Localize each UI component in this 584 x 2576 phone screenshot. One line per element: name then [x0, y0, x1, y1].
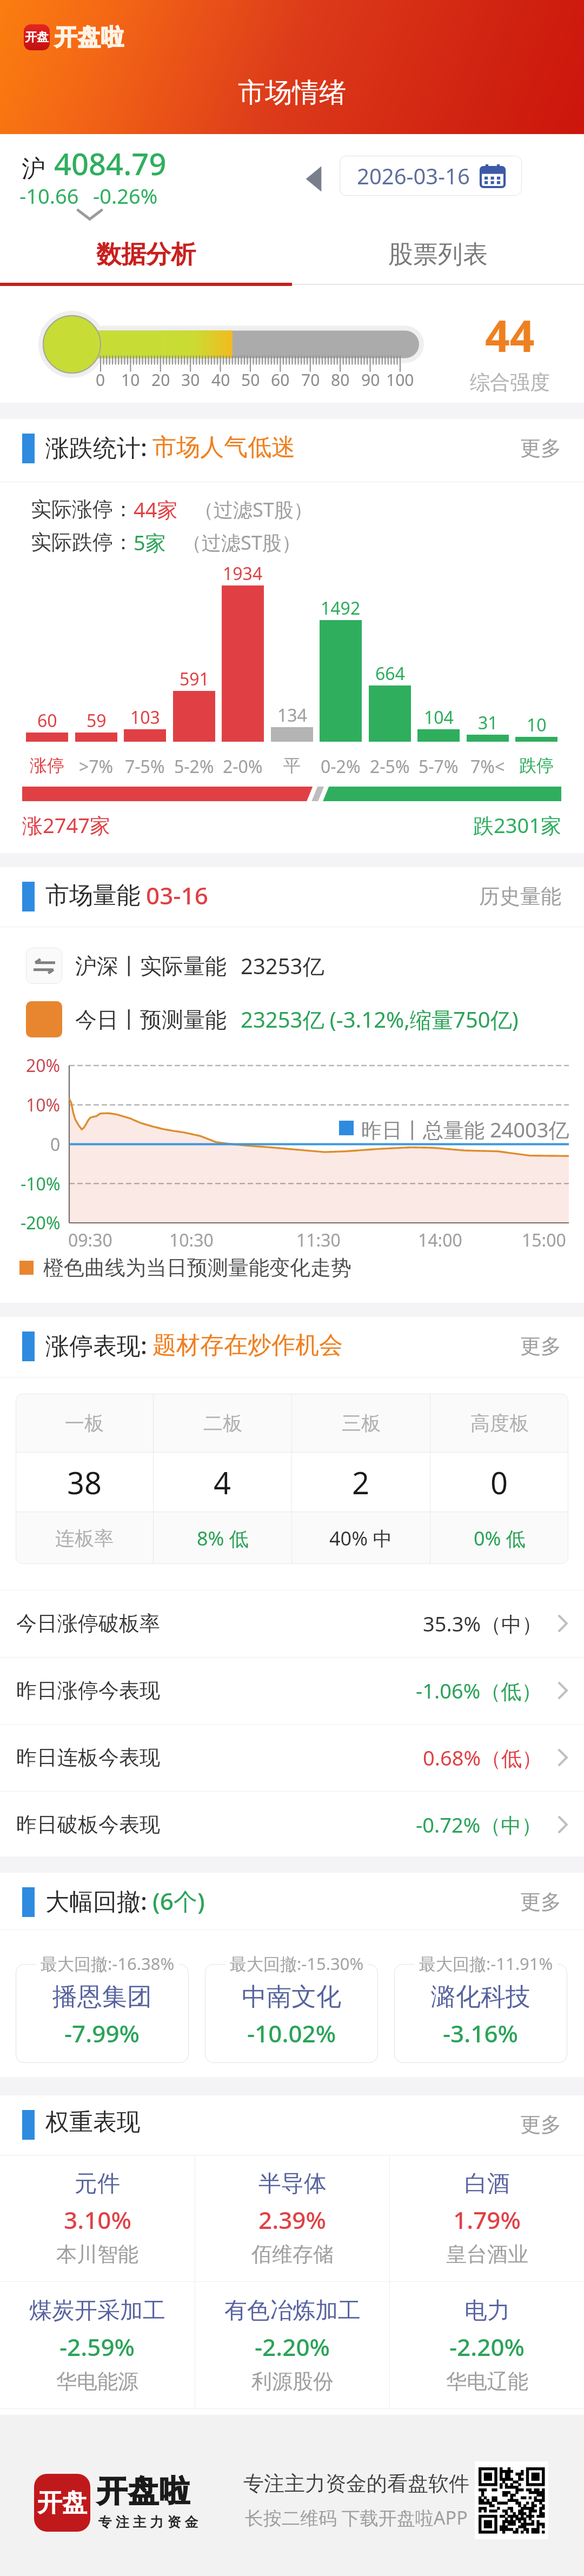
staticText: 二板 [203, 1411, 242, 1435]
button[interactable]: 更多 [520, 1333, 561, 1359]
staticText: 20 [151, 369, 170, 391]
staticText: 最大回撤:-11.91% [419, 1952, 553, 1975]
staticText: 昨日破板今表现 [16, 1812, 160, 1838]
staticText: 30 [181, 369, 200, 391]
staticText: 591 [180, 667, 209, 691]
staticText: 44家 [134, 495, 178, 523]
staticText: 2026-03-16 [357, 161, 470, 190]
staticText: 5家 [134, 528, 166, 556]
staticText: 134 [277, 703, 307, 727]
button[interactable]: 昨日涨停今表现 [0, 1657, 584, 1724]
button[interactable]: 股票列表 [292, 224, 584, 285]
staticText: -3.16% [443, 2017, 519, 2049]
staticText: -1.06%（低） [416, 1676, 542, 1705]
staticText: （过滤ST股） [194, 496, 313, 523]
button[interactable]: 2026-03-16 [340, 156, 522, 196]
staticText: 元件 [75, 2169, 120, 2198]
staticText: 涨停 [30, 755, 64, 776]
button[interactable]: 历史量能 [479, 883, 561, 909]
staticText: 0 [96, 369, 105, 391]
staticText: 104 [424, 705, 454, 729]
staticText: 最大回撤:-15.30% [230, 1952, 364, 1975]
staticText: 跌停 [519, 755, 554, 776]
staticText: 8% 低 [197, 1525, 249, 1552]
staticText: 7%< [470, 755, 505, 778]
button[interactable]: 更多 [520, 1889, 561, 1915]
staticText: 0.68%（低） [423, 1743, 542, 1772]
staticText: -10% [21, 1172, 61, 1196]
staticText: 5-7% [419, 755, 459, 778]
button[interactable]: 昨日破板今表现 [0, 1791, 584, 1858]
staticText: 电力 [464, 2297, 510, 2325]
staticText: 本川智能 [56, 2241, 138, 2267]
staticText: 1.79% [453, 2204, 521, 2236]
staticText: >7% [79, 755, 114, 778]
staticText: 历史量能 [479, 883, 561, 909]
staticText: 涨2747家 [22, 811, 110, 839]
staticText: 平 [283, 755, 301, 776]
staticText: 1492 [321, 596, 361, 620]
staticText: 4 [214, 1462, 231, 1503]
staticText: 2-0% [223, 755, 263, 778]
button[interactable]: 更多 [520, 2112, 561, 2138]
button[interactable]: 煤炭开采加工 [0, 2282, 195, 2408]
button[interactable] [394, 1964, 567, 2063]
button[interactable]: 更多 [520, 435, 561, 461]
staticText: 0-2% [321, 755, 361, 778]
staticText: 4084.79 [54, 143, 167, 184]
staticText: 中南文化 [242, 1981, 341, 2013]
staticText: 15:00 [522, 1228, 566, 1252]
staticText: 0% 低 [474, 1525, 526, 1552]
staticText: 长按二维码 下载开盘啦APP [245, 2505, 468, 2530]
staticText: 有色冶炼加工 [224, 2297, 361, 2325]
button[interactable]: 今日涨停破板率 [0, 1590, 584, 1657]
staticText: 橙色曲线为当日预测量能变化走势 [43, 1255, 351, 1281]
staticText: 题材存在炒作机会 [152, 1330, 343, 1360]
staticText: 实际跌停： [31, 529, 134, 555]
staticText: 60 [37, 709, 57, 733]
button[interactable]: 前一天 [304, 165, 324, 193]
staticText: 昨日涨停今表现 [16, 1678, 160, 1703]
button[interactable]: 半导体 [195, 2155, 389, 2281]
staticText: 23253亿 [241, 951, 324, 981]
button[interactable]: 电力 [390, 2282, 584, 2408]
staticText: 23253亿 (-3.12%,缩量750亿) [241, 1004, 519, 1034]
staticText: 一板 [65, 1411, 104, 1435]
staticText: 31 [478, 711, 498, 735]
staticText: 11:30 [296, 1228, 341, 1252]
button[interactable]: 元件 [0, 2155, 195, 2281]
staticText: 播恩集团 [52, 1981, 152, 2013]
staticText: 市场量能 [45, 881, 141, 910]
staticText: 35.3%（中） [423, 1609, 542, 1638]
staticText: 涨跌统计: [45, 431, 147, 463]
staticText: 开盘啦 [54, 23, 124, 52]
staticText: 10 [527, 713, 547, 737]
staticText: 数据分析 [96, 239, 196, 270]
staticText: 103 [130, 705, 160, 729]
staticText: 2-5% [370, 755, 410, 778]
button[interactable]: 有色冶炼加工 [195, 2282, 389, 2408]
staticText: -2.59% [59, 2331, 135, 2363]
staticText: 7-5% [125, 755, 165, 778]
staticText: 40% 中 [329, 1525, 393, 1552]
staticText: 2 [352, 1462, 370, 1503]
staticText: 40 [211, 369, 230, 391]
staticText: 3.10% [64, 2204, 131, 2236]
staticText: 综合强度 [470, 370, 550, 395]
staticText: 664 [375, 662, 405, 685]
button[interactable] [205, 1964, 378, 2063]
staticText: -10.66 [19, 182, 79, 210]
staticText: 专注主力资金的看盘软件 [243, 2471, 469, 2497]
button[interactable]: 白酒 [390, 2155, 584, 2281]
staticText: 皇台酒业 [446, 2241, 528, 2267]
staticText: 市场人气低迷 [152, 432, 295, 462]
button[interactable]: 数据分析 [0, 224, 292, 285]
button[interactable]: 昨日连板今表现 [0, 1724, 584, 1791]
staticText: 09:30 [68, 1228, 112, 1252]
staticText: 沪 [22, 154, 45, 184]
staticText: 44 [485, 305, 535, 364]
button[interactable] [16, 1964, 189, 2063]
staticText: 90 [361, 369, 380, 391]
staticText: 更多 [520, 1889, 561, 1915]
staticText: -20% [21, 1211, 61, 1235]
